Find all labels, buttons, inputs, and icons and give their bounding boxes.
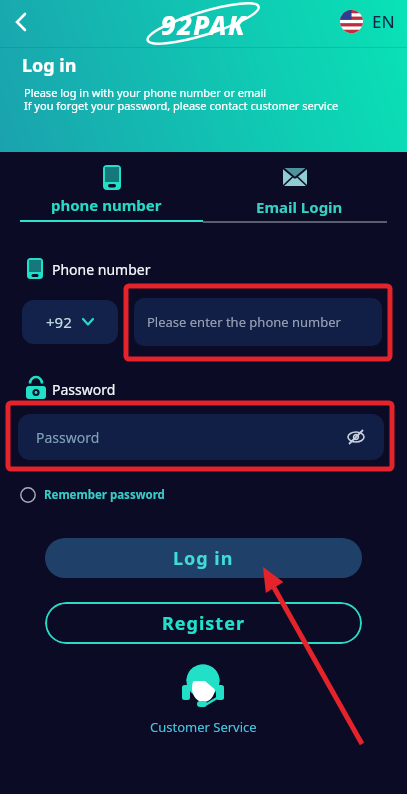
staticText: If you forget your password, please cont… [24,98,339,113]
button[interactable]: Password [18,414,384,460]
button[interactable]: Please enter the phone number [134,298,382,346]
staticText: phone number [51,195,162,215]
button[interactable]: Remember password [20,487,165,503]
staticText: Remember password [44,487,165,503]
staticText: Email Login [256,197,343,217]
button[interactable]: Register [45,602,362,644]
button[interactable]: Email Login [203,156,396,224]
staticText: Log in [173,546,234,571]
staticText: Password [52,380,116,399]
button[interactable]: Log in [45,538,362,578]
staticText: Register [162,611,245,636]
staticText: Please enter the phone number [147,313,341,331]
staticText: Phone number [52,260,151,279]
staticText: 92PAK [0,7,407,42]
staticText: Please log in with your phone number or … [24,85,267,100]
staticText: Log in [22,53,77,78]
staticText: Password [36,428,100,447]
button[interactable]: phone number [10,156,203,224]
staticText: EN [372,10,395,33]
button[interactable] [4,4,40,40]
staticText: +92 [46,312,72,332]
staticText: Customer Service [150,718,257,736]
button[interactable]: Customer Service [143,660,263,736]
button[interactable]: EN [340,10,395,33]
button[interactable]: +92 [22,300,118,344]
